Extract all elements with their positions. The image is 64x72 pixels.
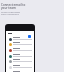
button[interactable] — [6, 37, 34, 42]
button[interactable] — [6, 54, 34, 59]
button[interactable] — [6, 65, 34, 70]
button[interactable] — [6, 42, 34, 47]
button[interactable] — [6, 59, 34, 64]
button[interactable]: Compose — [28, 35, 31, 38]
staticText: Connect email to your team — [1, 3, 26, 10]
button[interactable] — [6, 71, 34, 72]
button[interactable] — [6, 48, 34, 53]
staticText: Share messages from anywhere — [1, 10, 21, 16]
